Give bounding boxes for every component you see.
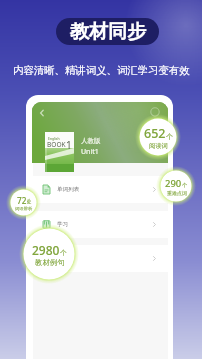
button[interactable]: 教材同步	[56, 18, 159, 45]
button[interactable]: 学习	[33, 211, 168, 238]
button[interactable]: 词汇	[33, 245, 168, 272]
staticText: 阅读词	[149, 142, 168, 150]
staticText: 290	[165, 177, 182, 190]
staticText: 重难点词	[167, 190, 187, 196]
staticText: 652	[144, 125, 166, 142]
staticText: English	[48, 136, 60, 141]
button[interactable]: 单词列表	[33, 176, 168, 203]
other: Back	[37, 108, 47, 118]
staticText: 学习	[57, 221, 69, 228]
staticText: Unit1	[81, 147, 99, 157]
staticText: 教材同步	[70, 20, 146, 44]
button[interactable]: 652	[135, 114, 181, 160]
staticText: 单词列表	[57, 186, 80, 193]
staticText: 个	[182, 182, 188, 189]
staticText: 72	[17, 195, 27, 206]
staticText: 教材例句	[35, 258, 65, 267]
staticText: 2980	[32, 242, 60, 258]
button[interactable]: 290	[156, 166, 196, 206]
staticText: 个	[166, 132, 173, 141]
staticText: 内容清晰、精讲词义、词汇学习变有效	[13, 64, 190, 77]
staticText: 词语辨析	[15, 206, 33, 211]
button[interactable]: 2980	[19, 224, 79, 284]
staticText: 处	[27, 199, 32, 205]
staticText: 个	[60, 249, 67, 257]
staticText: 词汇	[57, 255, 69, 262]
staticText: BOOK	[47, 140, 66, 149]
staticText: 1	[66, 138, 72, 152]
button[interactable]: 72	[6, 185, 41, 220]
staticText: 人教版	[81, 137, 101, 145]
